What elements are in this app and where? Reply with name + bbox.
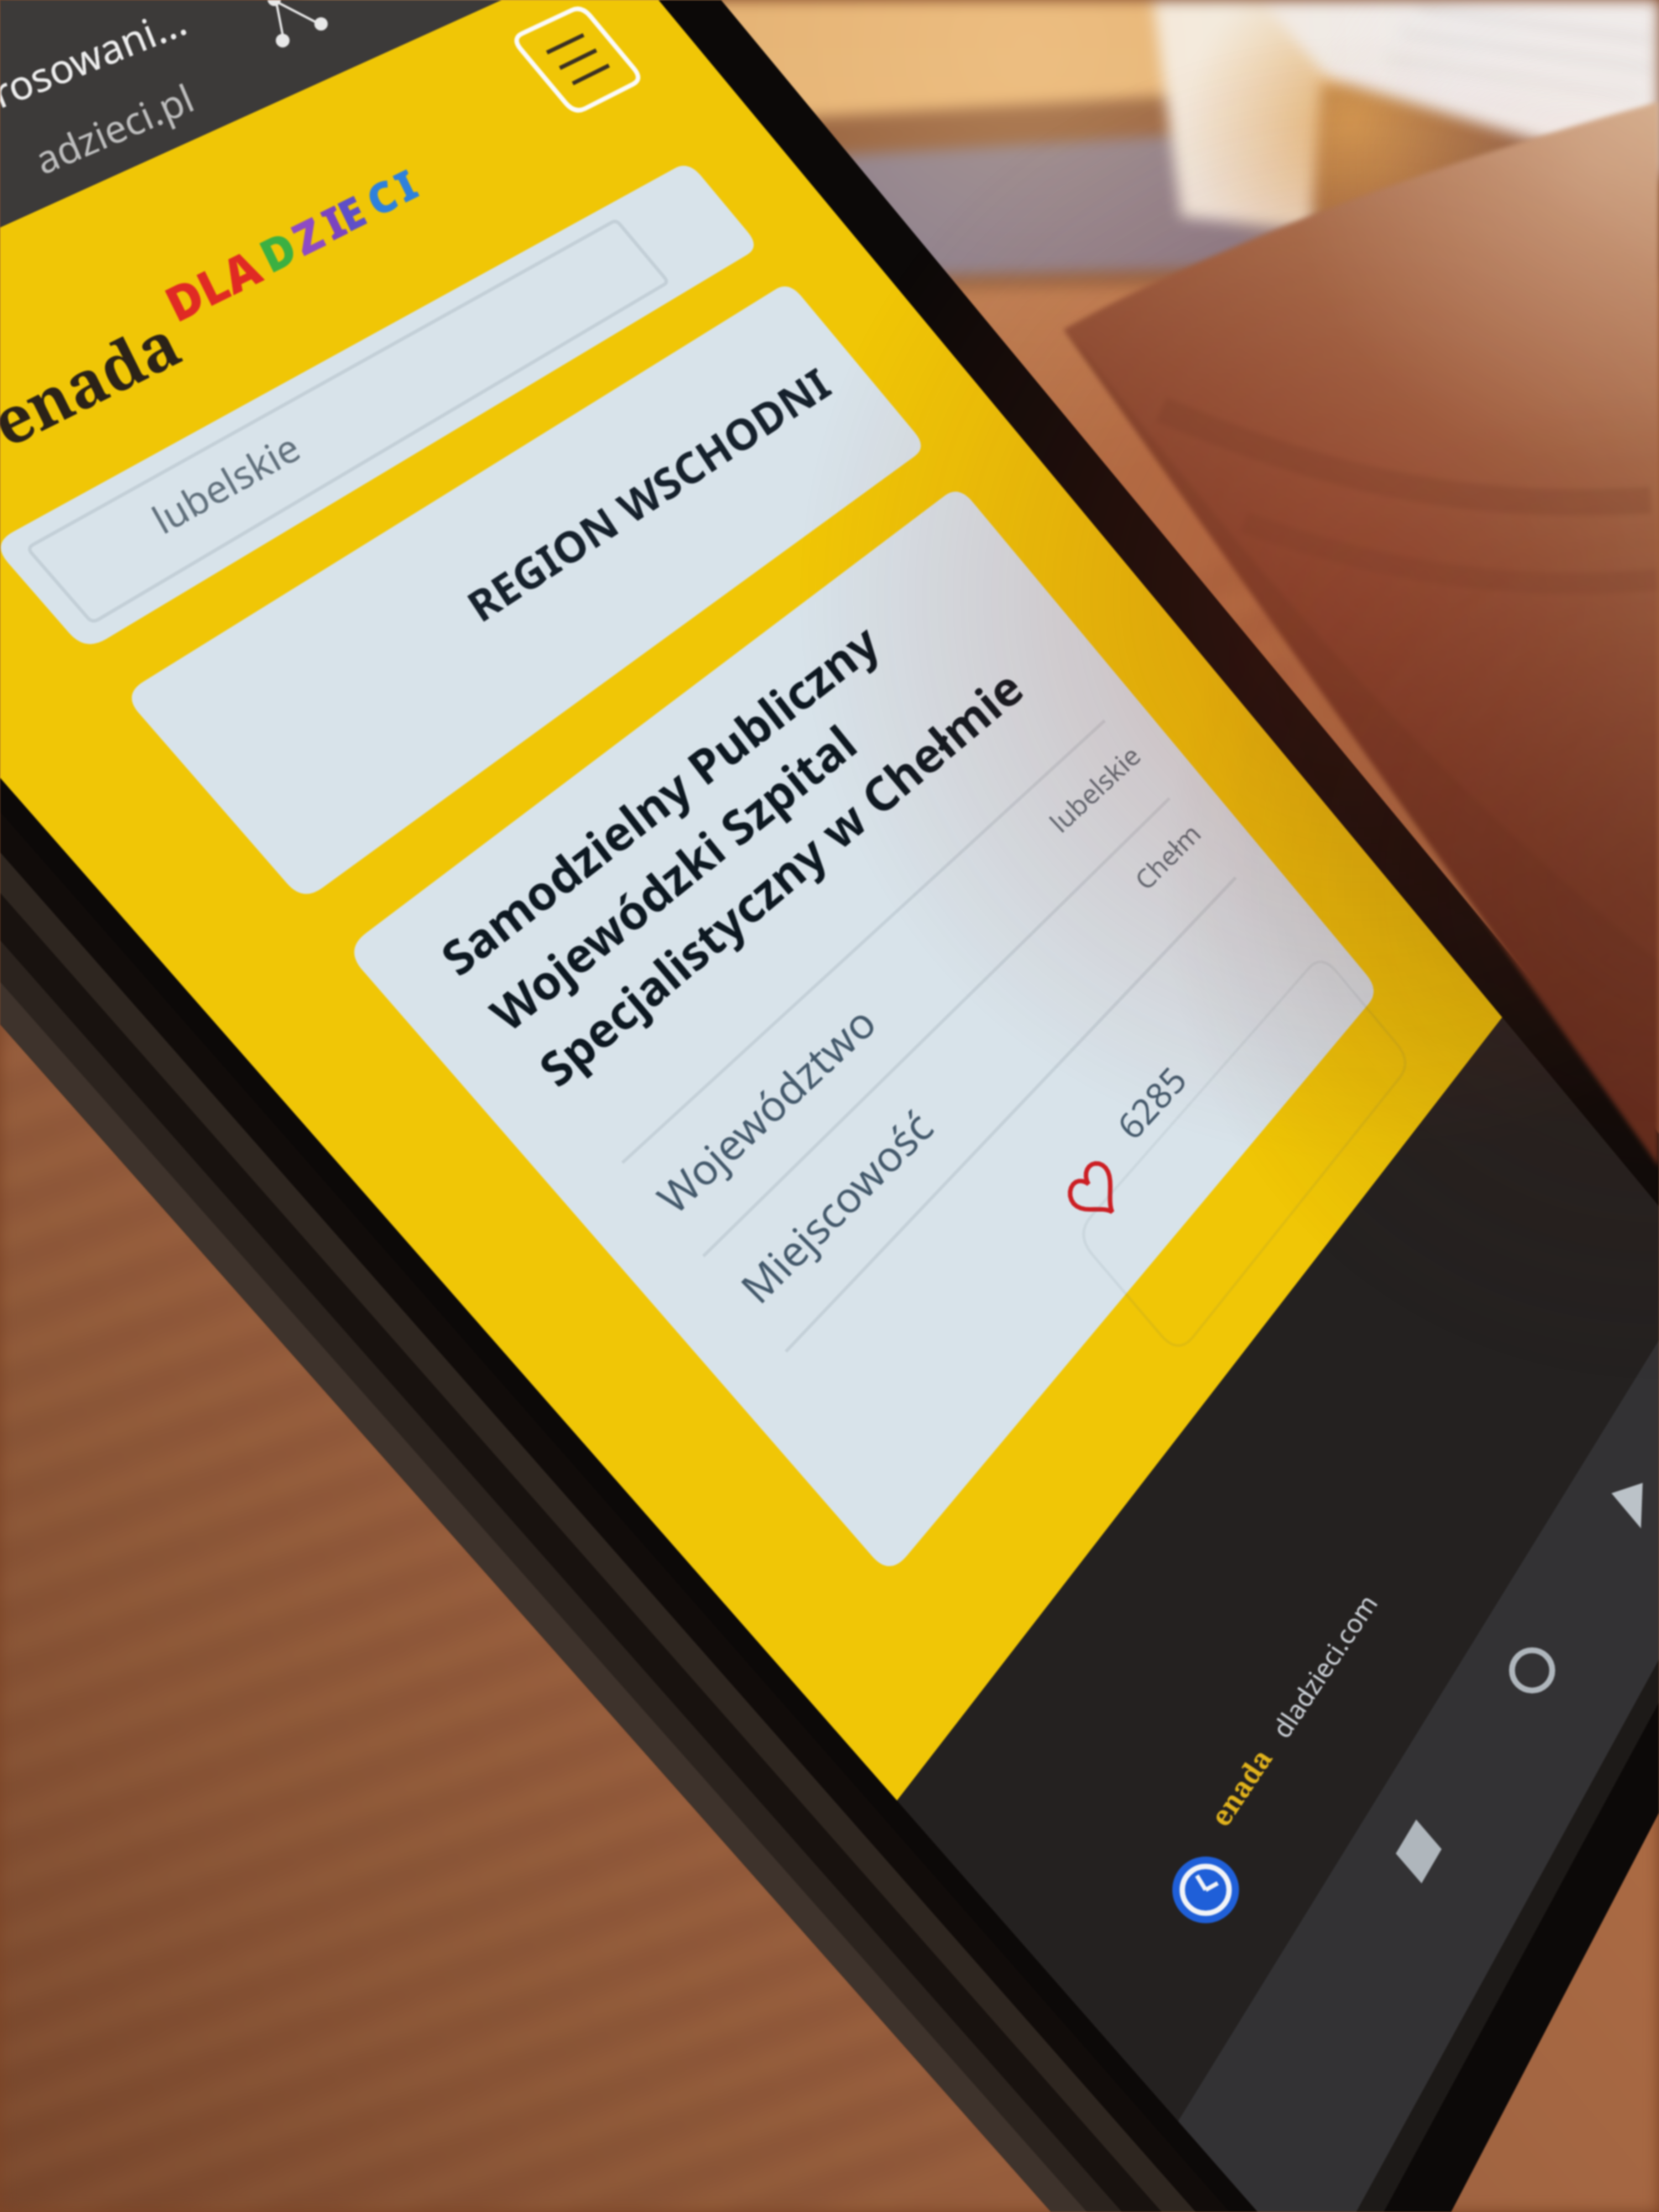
button[interactable]: Recent apps (1327, 1692, 1443, 1825)
button[interactable]: Open menu (476, 2, 669, 175)
button[interactable]: Like, 6285 (978, 1106, 1177, 1272)
button[interactable]: REGION WSCHODNI (95, 237, 858, 575)
button[interactable]: Samodzielny Publiczny Wojewódzki Szpital… (174, 478, 1335, 1429)
button[interactable]: Home (1443, 1504, 1559, 1637)
button[interactable]: Back (1543, 1327, 1659, 1460)
button[interactable]: Region: lubelskie (0, 84, 763, 383)
button[interactable]: dladzieci.pl logo (0, 77, 466, 414)
